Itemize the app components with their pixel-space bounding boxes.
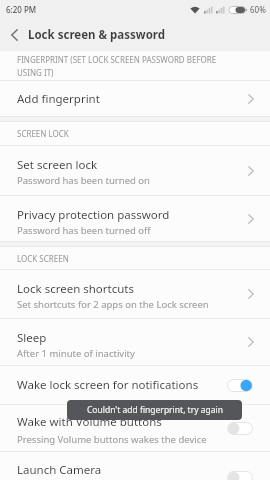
staticText: USING IT) (17, 67, 54, 78)
staticText: FINGERPRINT (SET LOCK SCREEN PASSWORD BE… (17, 54, 217, 65)
staticText: Pressing Volume buttons wakes the device (17, 433, 207, 446)
staticText: Lock screen & password (28, 27, 166, 43)
staticText: Couldn't add fingerprint, try again (87, 404, 223, 416)
button[interactable]: Sleep (0, 319, 270, 365)
staticText: Lock screen shortcuts (17, 281, 135, 297)
staticText: Add fingerprint (17, 91, 100, 107)
staticText: 6:20 PM (6, 4, 37, 15)
staticText: Launch Camera (17, 462, 102, 478)
staticText: Wake lock screen for notifications (17, 377, 199, 393)
staticText: LOCK SCREEN (17, 253, 69, 264)
button[interactable]: Wake with Volume buttons (0, 405, 270, 451)
button[interactable]: Lock screen shortcuts (0, 270, 270, 318)
button[interactable]: Set screen lock (0, 146, 270, 195)
staticText: Privacy protection password (17, 207, 170, 223)
staticText: Wake with Volume buttons (17, 414, 162, 430)
button[interactable]: Add fingerprint (0, 81, 270, 116)
button[interactable]: Privacy protection password (0, 196, 270, 241)
staticText: After 1 minute of inactivity (17, 347, 135, 360)
button[interactable]: Wake lock screen for notifications (0, 366, 270, 404)
staticText: Sleep (17, 330, 47, 346)
staticText: Password has been turned on (17, 174, 150, 187)
staticText: Set screen lock (17, 157, 98, 173)
staticText: 60% (250, 4, 266, 15)
staticText: Password has been turned off (17, 224, 151, 237)
staticText: Set shortcuts for 2 apps on the Lock scr… (17, 298, 209, 311)
button[interactable] (6, 27, 22, 43)
staticText: SCREEN LOCK (17, 128, 69, 139)
button[interactable]: Launch Camera (0, 452, 270, 480)
